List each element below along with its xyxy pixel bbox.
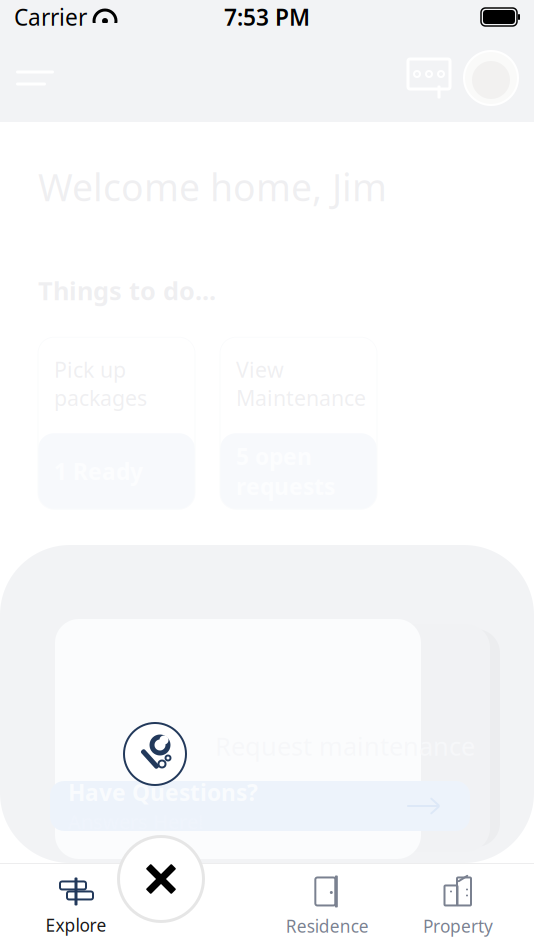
staticText: packages — [54, 383, 147, 412]
staticText: Maintenance — [236, 383, 366, 412]
staticText: Request maintenance — [215, 729, 475, 763]
staticText: Pick up — [54, 355, 126, 383]
button[interactable]: Explore — [26, 873, 126, 939]
button[interactable]: Close menu — [115, 833, 207, 925]
button[interactable]: Residence — [277, 873, 377, 939]
button[interactable]: Request maintenance — [120, 719, 190, 789]
staticText: 7:53 PM — [224, 2, 310, 32]
button[interactable]: Messages — [400, 50, 458, 106]
staticText: Things to do... — [38, 274, 216, 307]
staticText: Residence — [286, 914, 369, 937]
staticText: Property — [423, 914, 493, 937]
button[interactable]: View — [220, 337, 377, 509]
staticText: Explore — [45, 913, 106, 936]
staticText: Welcome home, Jim — [38, 162, 387, 212]
button[interactable]: Profile — [458, 45, 534, 111]
staticText: Have Questions? — [68, 777, 258, 807]
button[interactable]: Property — [408, 873, 508, 939]
staticText: View — [236, 355, 284, 383]
button[interactable]: Pick up — [38, 337, 195, 509]
staticText: Carrier — [14, 2, 87, 32]
staticText: Answers Here! — [68, 808, 203, 835]
